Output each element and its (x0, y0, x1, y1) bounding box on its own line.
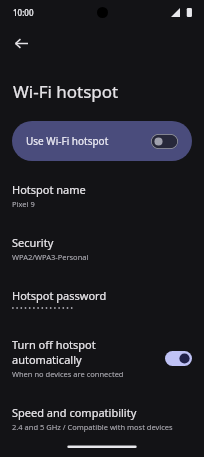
other: Use Wi-Fi hotspot toggle (151, 134, 178, 149)
button[interactable]: Turn off hotspot automatically (0, 328, 204, 388)
staticText: Use Wi-Fi hotspot (26, 134, 151, 148)
staticText: 10:00 (13, 7, 34, 18)
staticText: Hotspot password (12, 288, 107, 303)
button[interactable]: Hotspot password (0, 279, 204, 320)
staticText: Wi-Fi hotspot (13, 80, 119, 103)
staticText: Turn off hotspot automatically (12, 337, 159, 367)
button[interactable]: Speed and compatibility (0, 396, 204, 441)
button[interactable]: Hotspot name (0, 173, 204, 218)
staticText: Security (12, 235, 54, 250)
staticText: WPA2/WPA3-Personal (12, 252, 89, 262)
staticText: Pixel 9 (12, 199, 35, 209)
button[interactable]: Security (0, 226, 204, 271)
staticText: 2.4 and 5 GHz / Compatible with most dev… (12, 422, 173, 432)
staticText: When no devices are connected (12, 369, 124, 379)
button[interactable]: Use Wi-Fi hotspot (12, 121, 192, 161)
staticText: Speed and compatibility (12, 405, 137, 420)
button[interactable]: Back (6, 28, 36, 58)
staticText: Hotspot name (12, 182, 86, 197)
button[interactable]: Turn off hotspot automatically (165, 351, 192, 366)
